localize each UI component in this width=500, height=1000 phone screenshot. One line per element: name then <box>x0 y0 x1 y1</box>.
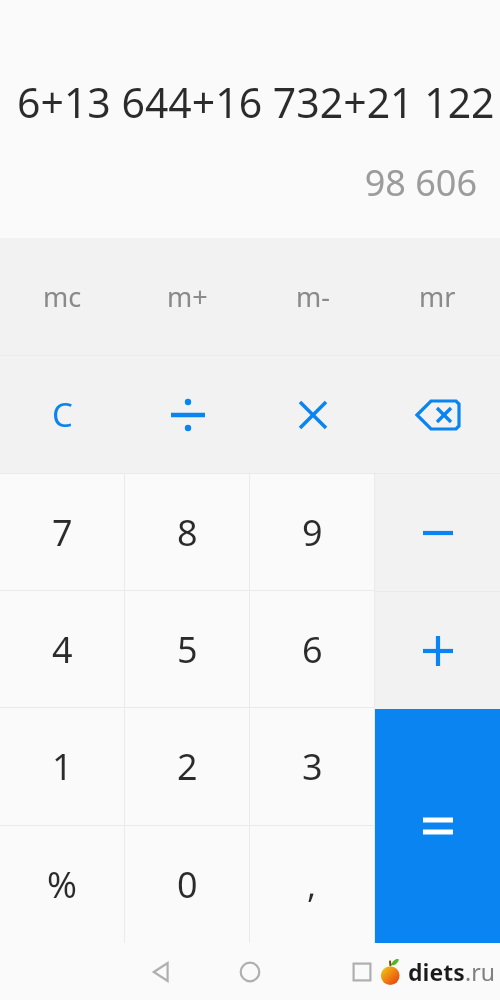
staticText: 8 <box>177 508 198 557</box>
staticText: 4 <box>52 625 73 674</box>
button[interactable]: 5 <box>125 591 249 707</box>
button[interactable]: 2 <box>125 708 249 825</box>
staticText: mc <box>43 278 82 315</box>
button[interactable]: Home <box>228 950 272 994</box>
button[interactable]: 3 <box>250 708 374 825</box>
staticText: , <box>307 862 317 908</box>
staticText: 9 <box>302 508 323 557</box>
button[interactable]: m+ <box>125 238 250 355</box>
staticText: 7 <box>52 508 73 557</box>
button[interactable]: Equals <box>375 709 500 943</box>
button[interactable]: 4 <box>0 591 124 707</box>
staticText: .ru <box>465 956 495 987</box>
staticText: diets <box>408 956 465 987</box>
staticText: 6+13 644+16 732+21 122 <box>17 74 495 130</box>
button[interactable]: Backspace <box>375 356 500 473</box>
staticText: 3 <box>302 742 323 791</box>
button[interactable]: 7 <box>0 474 124 590</box>
button[interactable]: 1 <box>0 708 124 825</box>
button[interactable]: 8 <box>125 474 249 590</box>
button[interactable]: , <box>250 826 374 943</box>
button[interactable]: Divide <box>125 356 250 473</box>
button[interactable]: Recent apps <box>340 950 384 994</box>
staticText: 1 <box>52 742 73 791</box>
button[interactable]: mr <box>375 238 500 355</box>
staticText: 6 <box>302 625 323 674</box>
staticText: mr <box>419 278 456 315</box>
button[interactable]: % <box>0 826 124 943</box>
staticText: 0 <box>177 860 198 909</box>
button[interactable]: C <box>0 356 125 473</box>
button[interactable]: mc <box>0 238 125 355</box>
button[interactable]: Back <box>139 950 183 994</box>
staticText: 5 <box>177 625 198 674</box>
staticText: 98 606 <box>364 158 477 207</box>
button[interactable]: 0 <box>125 826 249 943</box>
button[interactable]: 6 <box>250 591 374 707</box>
button[interactable]: 9 <box>250 474 374 590</box>
button[interactable]: m- <box>250 238 375 355</box>
staticText: m- <box>296 278 330 315</box>
staticText: m+ <box>167 278 208 315</box>
button[interactable]: Plus <box>375 592 500 709</box>
button[interactable]: Multiply <box>250 356 375 473</box>
button[interactable]: Minus <box>375 474 500 591</box>
staticText: C <box>52 392 73 437</box>
staticText: 2 <box>177 742 198 791</box>
staticText: % <box>47 860 77 909</box>
